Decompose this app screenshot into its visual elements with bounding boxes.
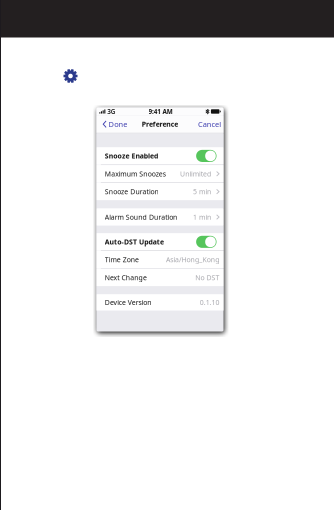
staticText: Preference <box>210 138 302 161</box>
staticText: Done <box>127 137 175 162</box>
button[interactable]: Maximum Snoozes <box>96 252 334 296</box>
button[interactable]: Snooze Duration <box>96 297 334 341</box>
staticText: Snooze Duration <box>117 308 253 331</box>
button[interactable]: Snooze Enabled <box>96 207 334 251</box>
staticText: Maximum Snoozes <box>117 263 271 286</box>
staticText: 3G <box>123 107 144 128</box>
button[interactable]: Done <box>96 127 182 171</box>
staticText: Snooze Enabled <box>117 218 252 241</box>
